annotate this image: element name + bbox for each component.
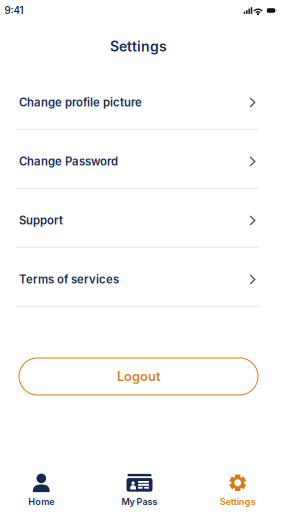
button[interactable]: Change Password [0, 135, 277, 188]
button[interactable]: Home [0, 461, 90, 512]
staticText: Change Password [19, 155, 118, 168]
staticText: Home [28, 496, 54, 507]
staticText: Terms of services [19, 273, 119, 286]
button[interactable]: Settings [189, 461, 284, 512]
staticText: Change profile picture [19, 96, 142, 109]
staticText: Support [19, 214, 63, 227]
button[interactable]: My Pass [90, 461, 189, 512]
staticText: Logout [117, 369, 160, 384]
staticText: My Pass [121, 496, 157, 507]
staticText: Settings [110, 38, 167, 55]
button[interactable]: Terms of services [0, 253, 277, 306]
staticText: 9:41 [4, 4, 23, 16]
button[interactable]: Support [0, 194, 277, 247]
staticText: Settings [220, 496, 256, 507]
button[interactable]: Logout [19, 358, 258, 395]
button[interactable]: Change profile picture [0, 76, 277, 129]
